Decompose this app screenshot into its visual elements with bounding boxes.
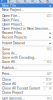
button[interactable]: Save with Encoding...: [0, 55, 53, 60]
button[interactable]: Edit: [8, 0, 15, 3]
staticText: Open Project...: [2, 22, 25, 26]
staticText: New Project...: [2, 8, 24, 12]
staticText: Code: [16, 0, 22, 3]
staticText: ⌥⌃W: [42, 86, 51, 90]
staticText: ⌘Q: [46, 96, 51, 100]
staticText: Save As...: [2, 51, 18, 55]
staticText: ▸: [49, 4, 51, 7]
staticText: Build: [46, 0, 52, 3]
staticText: Close All: [2, 82, 16, 86]
staticText: ⌘W: [45, 78, 51, 82]
staticText: Close: [2, 78, 11, 82]
staticText: Publish...: [2, 66, 17, 70]
button[interactable]: Close: [0, 77, 53, 82]
staticText: Open File...: [2, 14, 20, 18]
button[interactable]: Publish...: [0, 66, 53, 70]
button[interactable]: Import Dataset: [0, 41, 53, 45]
staticText: New File: [2, 4, 16, 7]
staticText: ⌘O: [46, 14, 51, 18]
button[interactable]: Session: [38, 0, 45, 3]
button[interactable]: Close All: [0, 82, 53, 86]
staticText: ▸: [49, 35, 51, 39]
staticText: Edit: [9, 0, 14, 3]
staticText: Print...: [2, 72, 12, 76]
staticText: Import Dataset: [2, 41, 25, 45]
button[interactable]: Quit Session...: [0, 96, 53, 100]
button[interactable]: Save All: [0, 60, 53, 64]
staticText: File: [1, 0, 6, 3]
staticText: Save All: [2, 60, 15, 64]
button[interactable]: Open Files...: [0, 18, 53, 22]
staticText: Plots: [31, 0, 37, 3]
button[interactable]: Save: [0, 47, 53, 51]
button[interactable]: Close All Except Current: [0, 86, 53, 90]
staticText: ▸: [49, 31, 51, 35]
button[interactable]: View: [23, 0, 30, 3]
staticText: Save: [2, 47, 10, 51]
button[interactable]: Save As...: [0, 51, 53, 55]
button[interactable]: Print...: [0, 72, 53, 76]
staticText: Save with Encoding...: [2, 56, 37, 60]
staticText: ⌘S: [46, 47, 51, 51]
staticText: ▸: [49, 41, 51, 45]
button[interactable]: Open Project in New Session...: [0, 26, 53, 31]
button[interactable]: File: [0, 0, 8, 3]
staticText: Quit Session...: [2, 96, 25, 100]
button[interactable]: Recent Files: [0, 31, 53, 35]
staticText: ⌃⇧W: [42, 82, 51, 86]
staticText: Close Project: [2, 91, 23, 94]
staticText: Recent Files: [2, 31, 22, 35]
button[interactable]: Plots: [30, 0, 38, 3]
button[interactable]: Build: [45, 0, 53, 3]
staticText: Close All Except Current: [2, 86, 40, 90]
button[interactable]: Recent Projects: [0, 35, 53, 39]
staticText: ⌃⌘S: [43, 60, 51, 64]
staticText: Session: [39, 0, 44, 3]
staticText: Open Files...: [2, 18, 22, 22]
button[interactable]: Open Project...: [0, 22, 53, 26]
button[interactable]: New File: [0, 3, 53, 8]
button[interactable]: Code: [15, 0, 23, 3]
staticText: Open Project in New Session...: [2, 27, 50, 31]
button[interactable]: New Project...: [0, 8, 53, 12]
staticText: View: [24, 0, 29, 3]
staticText: Recent Projects: [2, 35, 27, 39]
button[interactable]: Open File...: [0, 14, 53, 18]
staticText: ⌘P: [46, 72, 51, 76]
button[interactable]: Close Project: [0, 90, 53, 95]
